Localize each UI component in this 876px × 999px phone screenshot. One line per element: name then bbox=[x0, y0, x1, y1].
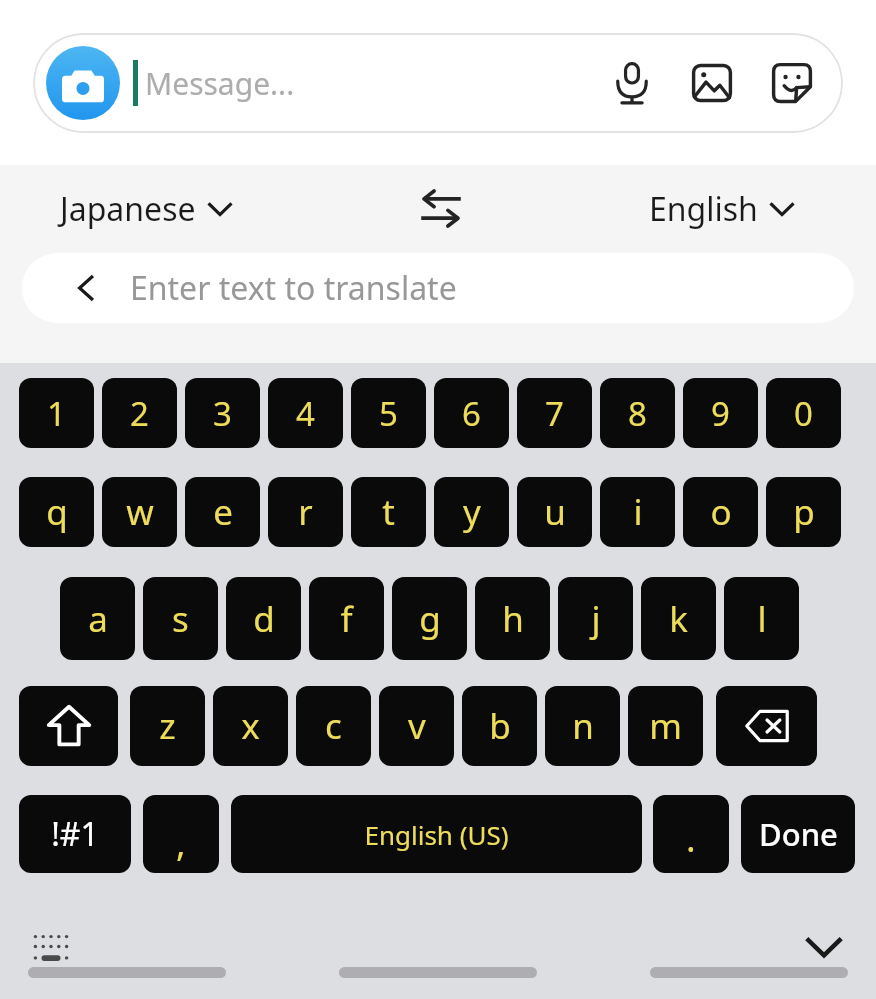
button[interactable]: w bbox=[102, 477, 177, 547]
button[interactable]: 5 bbox=[351, 378, 426, 448]
staticText: c bbox=[325, 702, 342, 750]
button[interactable]: r bbox=[268, 477, 343, 547]
staticText: x bbox=[241, 702, 260, 750]
staticText: , bbox=[176, 818, 186, 867]
staticText: k bbox=[669, 595, 688, 643]
button[interactable]: u bbox=[517, 477, 592, 547]
button[interactable]: j bbox=[558, 577, 633, 660]
staticText: 3 bbox=[213, 391, 232, 436]
button[interactable]: 3 bbox=[185, 378, 260, 448]
button[interactable]: f bbox=[309, 577, 384, 660]
button[interactable]: h bbox=[475, 577, 550, 660]
button[interactable]: l bbox=[724, 577, 799, 660]
staticText: Message... bbox=[145, 63, 295, 104]
staticText: v bbox=[408, 702, 426, 750]
staticText: d bbox=[253, 595, 275, 643]
button[interactable]: p bbox=[766, 477, 841, 547]
button[interactable]: 2 bbox=[102, 378, 177, 448]
staticText: r bbox=[298, 488, 313, 536]
staticText: y bbox=[463, 488, 481, 536]
button[interactable]: 9 bbox=[683, 378, 758, 448]
staticText: p bbox=[793, 488, 815, 536]
staticText: u bbox=[544, 488, 566, 536]
button[interactable]: c bbox=[296, 686, 371, 766]
button[interactable]: 4 bbox=[268, 378, 343, 448]
staticText: 5 bbox=[379, 391, 398, 436]
staticText: m bbox=[649, 702, 682, 750]
staticText: o bbox=[710, 488, 732, 536]
button[interactable]: 1 bbox=[19, 378, 94, 448]
staticText: t bbox=[382, 488, 395, 536]
button[interactable]: Hide keyboard bbox=[798, 921, 850, 973]
staticText: English bbox=[649, 187, 758, 231]
button[interactable]: m bbox=[628, 686, 703, 766]
staticText: b bbox=[489, 702, 511, 750]
staticText: 8 bbox=[628, 391, 647, 436]
staticText: q bbox=[46, 488, 68, 536]
button[interactable]: q bbox=[19, 477, 94, 547]
staticText: n bbox=[572, 702, 594, 750]
button[interactable]: Stickers bbox=[765, 56, 819, 110]
staticText: . bbox=[686, 814, 696, 863]
button[interactable]: Done bbox=[741, 795, 855, 873]
staticText: 6 bbox=[462, 391, 481, 436]
button[interactable]: n bbox=[545, 686, 620, 766]
button[interactable]: Enter text to translate bbox=[22, 253, 854, 323]
staticText: 1 bbox=[47, 391, 66, 436]
button[interactable]: Swap languages bbox=[412, 180, 470, 238]
staticText: j bbox=[591, 595, 601, 643]
button[interactable]: v bbox=[379, 686, 454, 766]
staticText: 0 bbox=[794, 391, 813, 436]
button[interactable]: x bbox=[213, 686, 288, 766]
button[interactable]: b bbox=[462, 686, 537, 766]
staticText: Japanese bbox=[60, 187, 196, 231]
staticText: a bbox=[88, 595, 108, 643]
button[interactable]: Backspace bbox=[716, 686, 817, 766]
staticText: s bbox=[172, 595, 189, 643]
button[interactable]: y bbox=[434, 477, 509, 547]
button[interactable]: Shift bbox=[19, 686, 118, 766]
button[interactable]: e bbox=[185, 477, 260, 547]
button[interactable]: d bbox=[226, 577, 301, 660]
staticText: 2 bbox=[130, 391, 149, 436]
button[interactable]: English (US) bbox=[231, 795, 642, 873]
staticText: g bbox=[419, 595, 441, 643]
button[interactable]: Keyboard layout bbox=[28, 925, 74, 971]
button[interactable]: 7 bbox=[517, 378, 592, 448]
button[interactable]: Voice input bbox=[605, 56, 659, 110]
staticText: Enter text to translate bbox=[130, 266, 457, 310]
button[interactable]: . bbox=[653, 795, 729, 873]
button[interactable]: a bbox=[60, 577, 135, 660]
button[interactable]: s bbox=[143, 577, 218, 660]
button[interactable]: Camera bbox=[46, 46, 120, 120]
button[interactable]: Japanese bbox=[60, 187, 234, 231]
staticText: h bbox=[502, 595, 524, 643]
staticText: Done bbox=[759, 813, 838, 855]
staticText: f bbox=[340, 595, 353, 643]
staticText: l bbox=[757, 595, 767, 643]
staticText: w bbox=[126, 488, 154, 536]
staticText: i bbox=[633, 488, 643, 536]
button[interactable]: i bbox=[600, 477, 675, 547]
button[interactable]: t bbox=[351, 477, 426, 547]
button[interactable]: 8 bbox=[600, 378, 675, 448]
button[interactable]: z bbox=[130, 686, 205, 766]
button[interactable]: g bbox=[392, 577, 467, 660]
button[interactable]: o bbox=[683, 477, 758, 547]
button[interactable]: 6 bbox=[434, 378, 509, 448]
staticText: 7 bbox=[545, 391, 564, 436]
button[interactable]: Gallery bbox=[685, 56, 739, 110]
staticText: e bbox=[213, 488, 233, 536]
staticText: 4 bbox=[296, 391, 315, 436]
button[interactable]: 0 bbox=[766, 378, 841, 448]
staticText: !#1 bbox=[51, 812, 99, 856]
staticText: 9 bbox=[711, 391, 730, 436]
button[interactable]: k bbox=[641, 577, 716, 660]
button[interactable]: English bbox=[649, 187, 796, 231]
button[interactable]: !#1 bbox=[19, 795, 131, 873]
staticText: z bbox=[159, 702, 176, 750]
button[interactable]: , bbox=[143, 795, 219, 873]
staticText: English (US) bbox=[364, 817, 509, 852]
